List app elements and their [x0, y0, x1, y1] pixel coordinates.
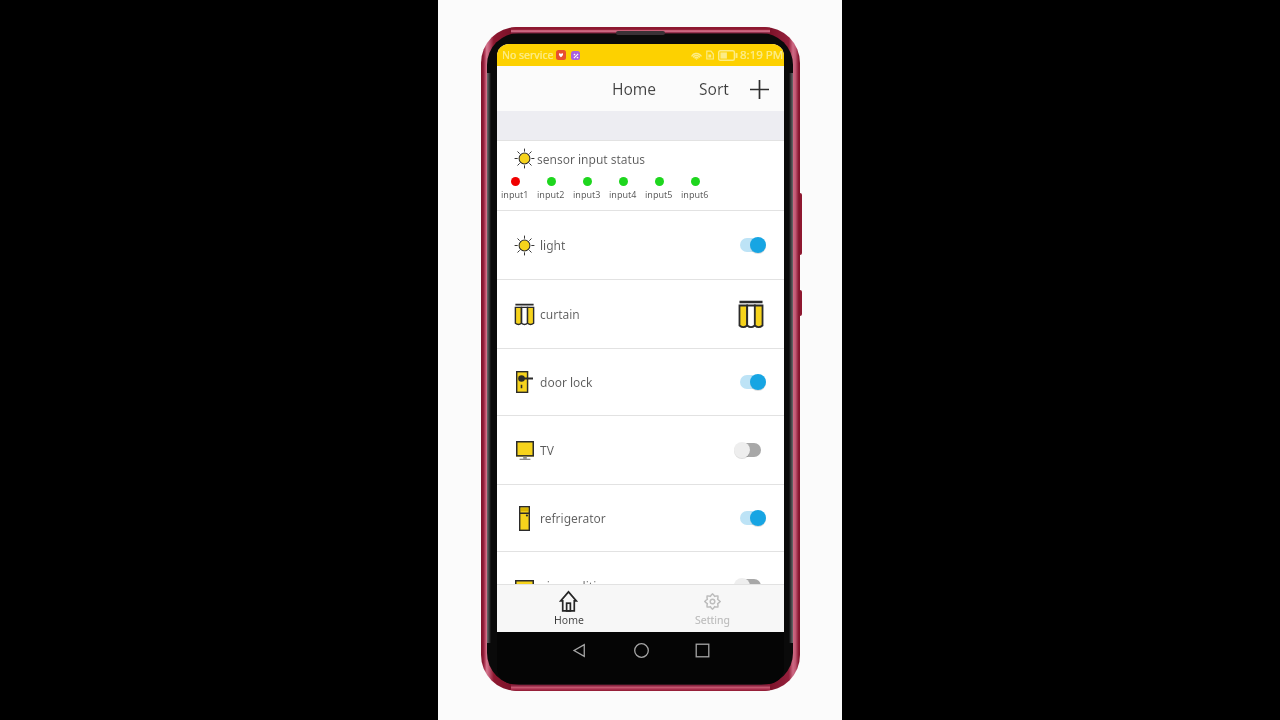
button[interactable]: turn off refrigerator — [734, 506, 766, 530]
button[interactable]: open or close curtain — [736, 298, 766, 330]
staticText: refrigerator — [540, 510, 606, 526]
staticText: curtain — [540, 306, 580, 322]
staticText: input6 — [681, 188, 709, 200]
button[interactable]: Home — [606, 72, 663, 105]
staticText: air conditioner — [540, 578, 623, 594]
button[interactable]: refrigerator — [497, 485, 784, 551]
staticText: input5 — [645, 188, 673, 200]
button[interactable]: air conditioner — [497, 552, 784, 620]
staticText: input4 — [609, 188, 637, 200]
staticText: input3 — [573, 188, 601, 200]
staticText: No service — [502, 48, 554, 62]
button[interactable]: curtain — [497, 280, 784, 348]
staticText: door lock — [540, 374, 593, 390]
button[interactable]: TV — [497, 416, 784, 484]
button[interactable]: Setting — [640, 585, 784, 632]
staticText: input2 — [537, 188, 565, 200]
staticText: Sort — [699, 78, 729, 99]
button[interactable]: sensor input status — [497, 141, 784, 210]
button[interactable]: turn off light — [734, 233, 766, 257]
staticText: light — [540, 237, 566, 253]
button[interactable]: Home — [626, 635, 656, 665]
button[interactable]: Home — [497, 585, 640, 632]
staticText: sensor input status — [537, 151, 646, 167]
button[interactable]: Back — [564, 635, 594, 665]
staticText: TV — [540, 442, 554, 458]
button[interactable]: turn off door lock — [734, 370, 766, 394]
button[interactable]: turn on TV — [734, 438, 766, 462]
staticText: Home — [612, 78, 657, 99]
button[interactable]: turn on air conditioner — [734, 574, 766, 598]
button[interactable]: light — [497, 211, 784, 279]
button[interactable]: Add device — [742, 72, 776, 106]
staticText: Setting — [695, 613, 730, 627]
button[interactable]: door lock — [497, 349, 784, 415]
staticText: Home — [554, 613, 584, 627]
staticText: 8:19 PM — [740, 47, 784, 63]
button[interactable]: Sort — [693, 72, 735, 105]
button[interactable]: Recent apps — [687, 635, 717, 665]
staticText: input1 — [501, 188, 529, 200]
